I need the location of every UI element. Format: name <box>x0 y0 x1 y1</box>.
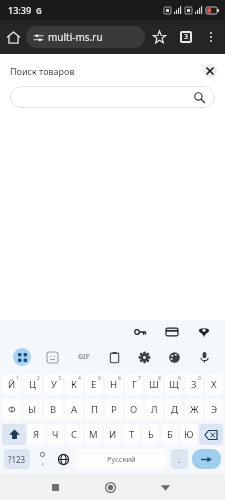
button[interactable]: Ю <box>180 424 197 445</box>
staticText: Ж <box>190 403 199 416</box>
staticText: И <box>109 428 117 441</box>
staticText: Г <box>132 378 137 391</box>
staticText: Ы <box>28 403 37 416</box>
staticText: Русский <box>107 454 136 464</box>
staticText: Ш <box>149 378 159 391</box>
button[interactable]: Ч <box>47 424 64 445</box>
staticText: К <box>71 378 77 391</box>
button[interactable]: Русский <box>76 449 167 469</box>
button[interactable]: multi-ms.ru <box>26 26 145 48</box>
button[interactable]: О <box>125 399 143 420</box>
button[interactable]: More options <box>199 25 223 49</box>
button[interactable]: Й <box>2 374 21 395</box>
staticText: 1 <box>16 375 19 382</box>
button[interactable] <box>10 86 215 108</box>
button[interactable]: Е <box>85 374 103 395</box>
staticText: . <box>178 453 181 465</box>
staticText: 6 <box>118 375 121 382</box>
button[interactable]: Tabs <box>173 24 199 50</box>
button[interactable]: Ж <box>185 399 203 420</box>
staticText: GIF <box>78 352 90 362</box>
staticText: ?123 <box>8 454 26 465</box>
staticText: О <box>130 403 138 416</box>
button[interactable]: Х <box>205 374 223 395</box>
staticText: G <box>36 5 42 16</box>
staticText: 2 <box>37 375 40 382</box>
staticText: Ц <box>29 378 37 391</box>
button[interactable]: Back <box>152 474 178 500</box>
staticText: multi-ms.ru <box>48 30 103 44</box>
button[interactable]: Voice input <box>189 344 219 370</box>
button[interactable]: Р <box>105 399 123 420</box>
staticText: Поиск товаров <box>10 65 75 77</box>
button[interactable]: Т <box>123 424 140 445</box>
button[interactable]: Comma <box>34 449 51 469</box>
button[interactable]: С <box>66 424 83 445</box>
button[interactable]: Л <box>145 399 163 420</box>
button[interactable]: Search <box>192 449 221 469</box>
staticText: Р <box>111 403 117 416</box>
button[interactable]: В <box>44 399 63 420</box>
button[interactable]: П <box>85 399 103 420</box>
staticText: Й <box>8 378 16 391</box>
button[interactable]: Payment cards <box>161 321 183 343</box>
staticText: 3 <box>184 32 189 42</box>
staticText: Е <box>91 378 97 391</box>
staticText: Т <box>129 428 135 441</box>
staticText: 7 <box>138 375 141 382</box>
staticText: 3 <box>58 375 61 382</box>
staticText: З <box>191 378 197 391</box>
button[interactable]: З <box>185 374 203 395</box>
staticText: В <box>50 403 57 416</box>
button[interactable]: Close <box>203 64 217 78</box>
button[interactable]: Bookmark <box>145 23 173 51</box>
button[interactable]: ?123 <box>4 449 30 469</box>
staticText: С <box>71 428 78 441</box>
button[interactable]: Ц <box>23 374 42 395</box>
staticText: Н <box>110 378 118 391</box>
button[interactable]: Ф <box>2 399 21 420</box>
staticText: Л <box>151 403 158 416</box>
button[interactable]: Э <box>205 399 223 420</box>
staticText: Э <box>211 403 218 416</box>
staticText: 9 <box>178 375 181 382</box>
button[interactable]: Ь <box>142 424 159 445</box>
button[interactable]: У <box>44 374 63 395</box>
staticText: 0 <box>198 375 201 382</box>
button[interactable]: Passwords <box>129 321 151 343</box>
button[interactable]: К <box>65 374 83 395</box>
button[interactable]: М <box>85 424 102 445</box>
staticText: У <box>51 378 57 391</box>
button[interactable]: Г <box>125 374 143 395</box>
button[interactable]: А <box>65 399 83 420</box>
button[interactable]: Ш <box>145 374 163 395</box>
staticText: Я <box>33 428 40 441</box>
button[interactable]: И <box>104 424 121 445</box>
button[interactable]: Home <box>97 474 123 500</box>
button[interactable]: . <box>171 449 188 469</box>
button[interactable]: Ы <box>23 399 42 420</box>
staticText: Ч <box>52 428 59 441</box>
button[interactable]: Shift <box>2 424 26 445</box>
button[interactable]: Н <box>105 374 123 395</box>
button[interactable]: Д <box>165 399 183 420</box>
button[interactable]: Apps <box>6 344 37 370</box>
button[interactable]: Home <box>0 24 26 50</box>
button[interactable]: Change language <box>55 449 72 469</box>
button[interactable]: Я <box>28 424 45 445</box>
button[interactable]: Б <box>161 424 178 445</box>
button[interactable]: Backspace <box>199 424 223 445</box>
button[interactable]: Stickers <box>37 344 68 370</box>
button[interactable]: Addresses <box>193 321 215 343</box>
staticText: 13:39 <box>8 4 32 16</box>
staticText: Щ <box>169 378 179 391</box>
staticText: Б <box>167 428 173 441</box>
button[interactable]: GIF <box>68 344 99 370</box>
staticText: П <box>91 403 98 416</box>
button[interactable]: Recent apps <box>42 474 68 500</box>
staticText: Ф <box>8 403 16 416</box>
button[interactable]: Themes <box>159 344 189 370</box>
button[interactable]: Settings <box>129 344 159 370</box>
button[interactable]: Clipboard <box>99 344 129 370</box>
button[interactable]: Щ <box>165 374 183 395</box>
